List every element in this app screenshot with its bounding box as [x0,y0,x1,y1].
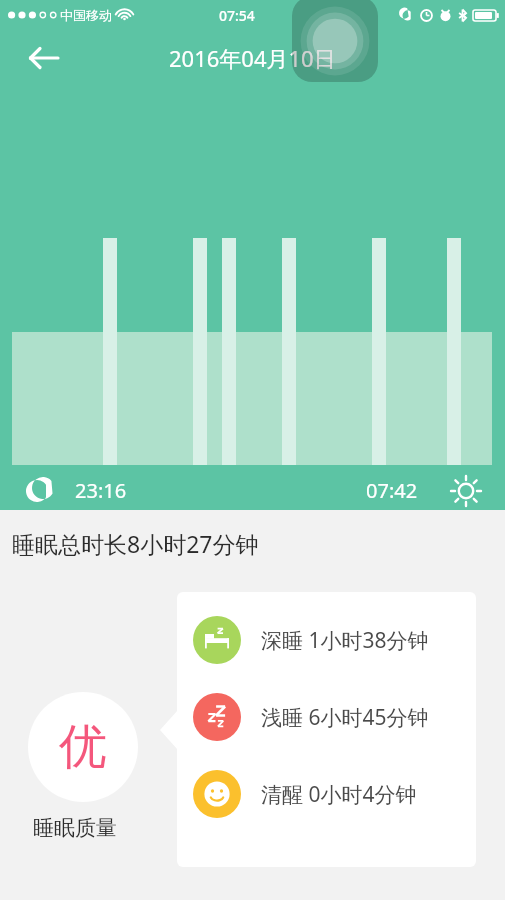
staticText: 23:16 [75,477,127,504]
staticText: 优 [59,717,107,777]
staticText: 07:42 [366,477,418,504]
staticText: 清醒 0小时4分钟 [261,780,417,809]
staticText: 深睡 1小时38分钟 [261,626,429,655]
staticText: 睡眠总时长8小时27分钟 [12,528,259,559]
staticText: 浅睡 6小时45分钟 [261,703,429,732]
staticText: 睡眠质量 [33,815,117,841]
staticText: 中国移动 [60,7,112,23]
staticText: 07:54 [219,6,255,25]
button[interactable]: 深睡 1小时38分钟 [177,592,476,867]
button[interactable]: 优 [28,692,138,802]
button[interactable]: Assistive touch [292,0,378,82]
button[interactable]: Back [22,36,66,80]
staticText: 2016年04月10日 [169,43,336,73]
